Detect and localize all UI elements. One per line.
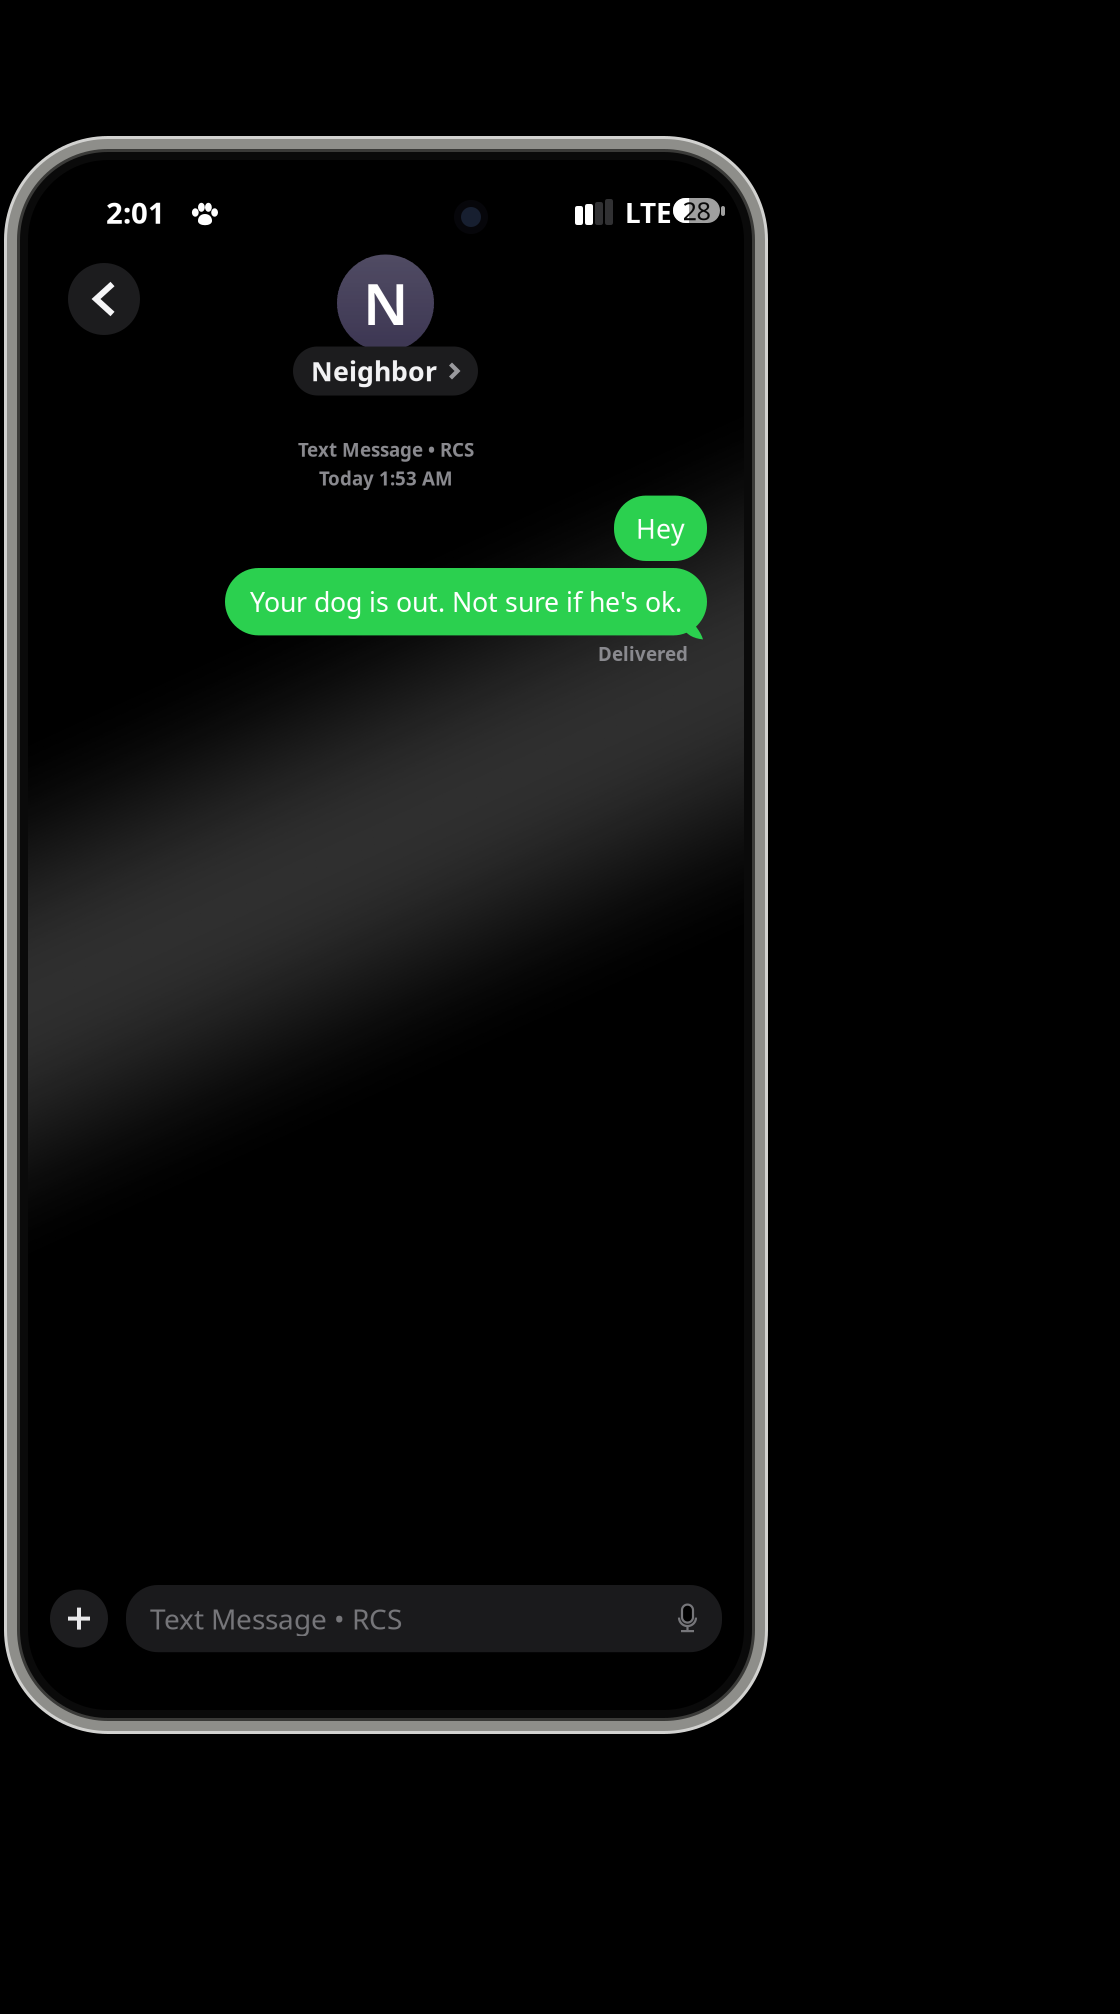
- staticText: Text Message • RCS: [150, 1600, 402, 1637]
- button[interactable]: N: [293, 257, 478, 398]
- button[interactable]: Back: [68, 263, 140, 335]
- staticText: 2:01: [106, 193, 165, 232]
- staticText: Delivered: [598, 641, 688, 666]
- staticText: Text Message • RCS: [298, 437, 474, 462]
- staticText: Neighbor: [311, 353, 437, 389]
- button[interactable]: Add attachment: [50, 1590, 108, 1648]
- staticText: Hey: [636, 511, 685, 546]
- staticText: 28: [682, 194, 710, 227]
- staticText: Your dog is out. Not sure if he's ok.: [250, 584, 682, 619]
- staticText: N: [363, 265, 408, 341]
- staticText: LTE: [625, 194, 672, 231]
- staticText: Today 1:53 AM: [319, 466, 453, 491]
